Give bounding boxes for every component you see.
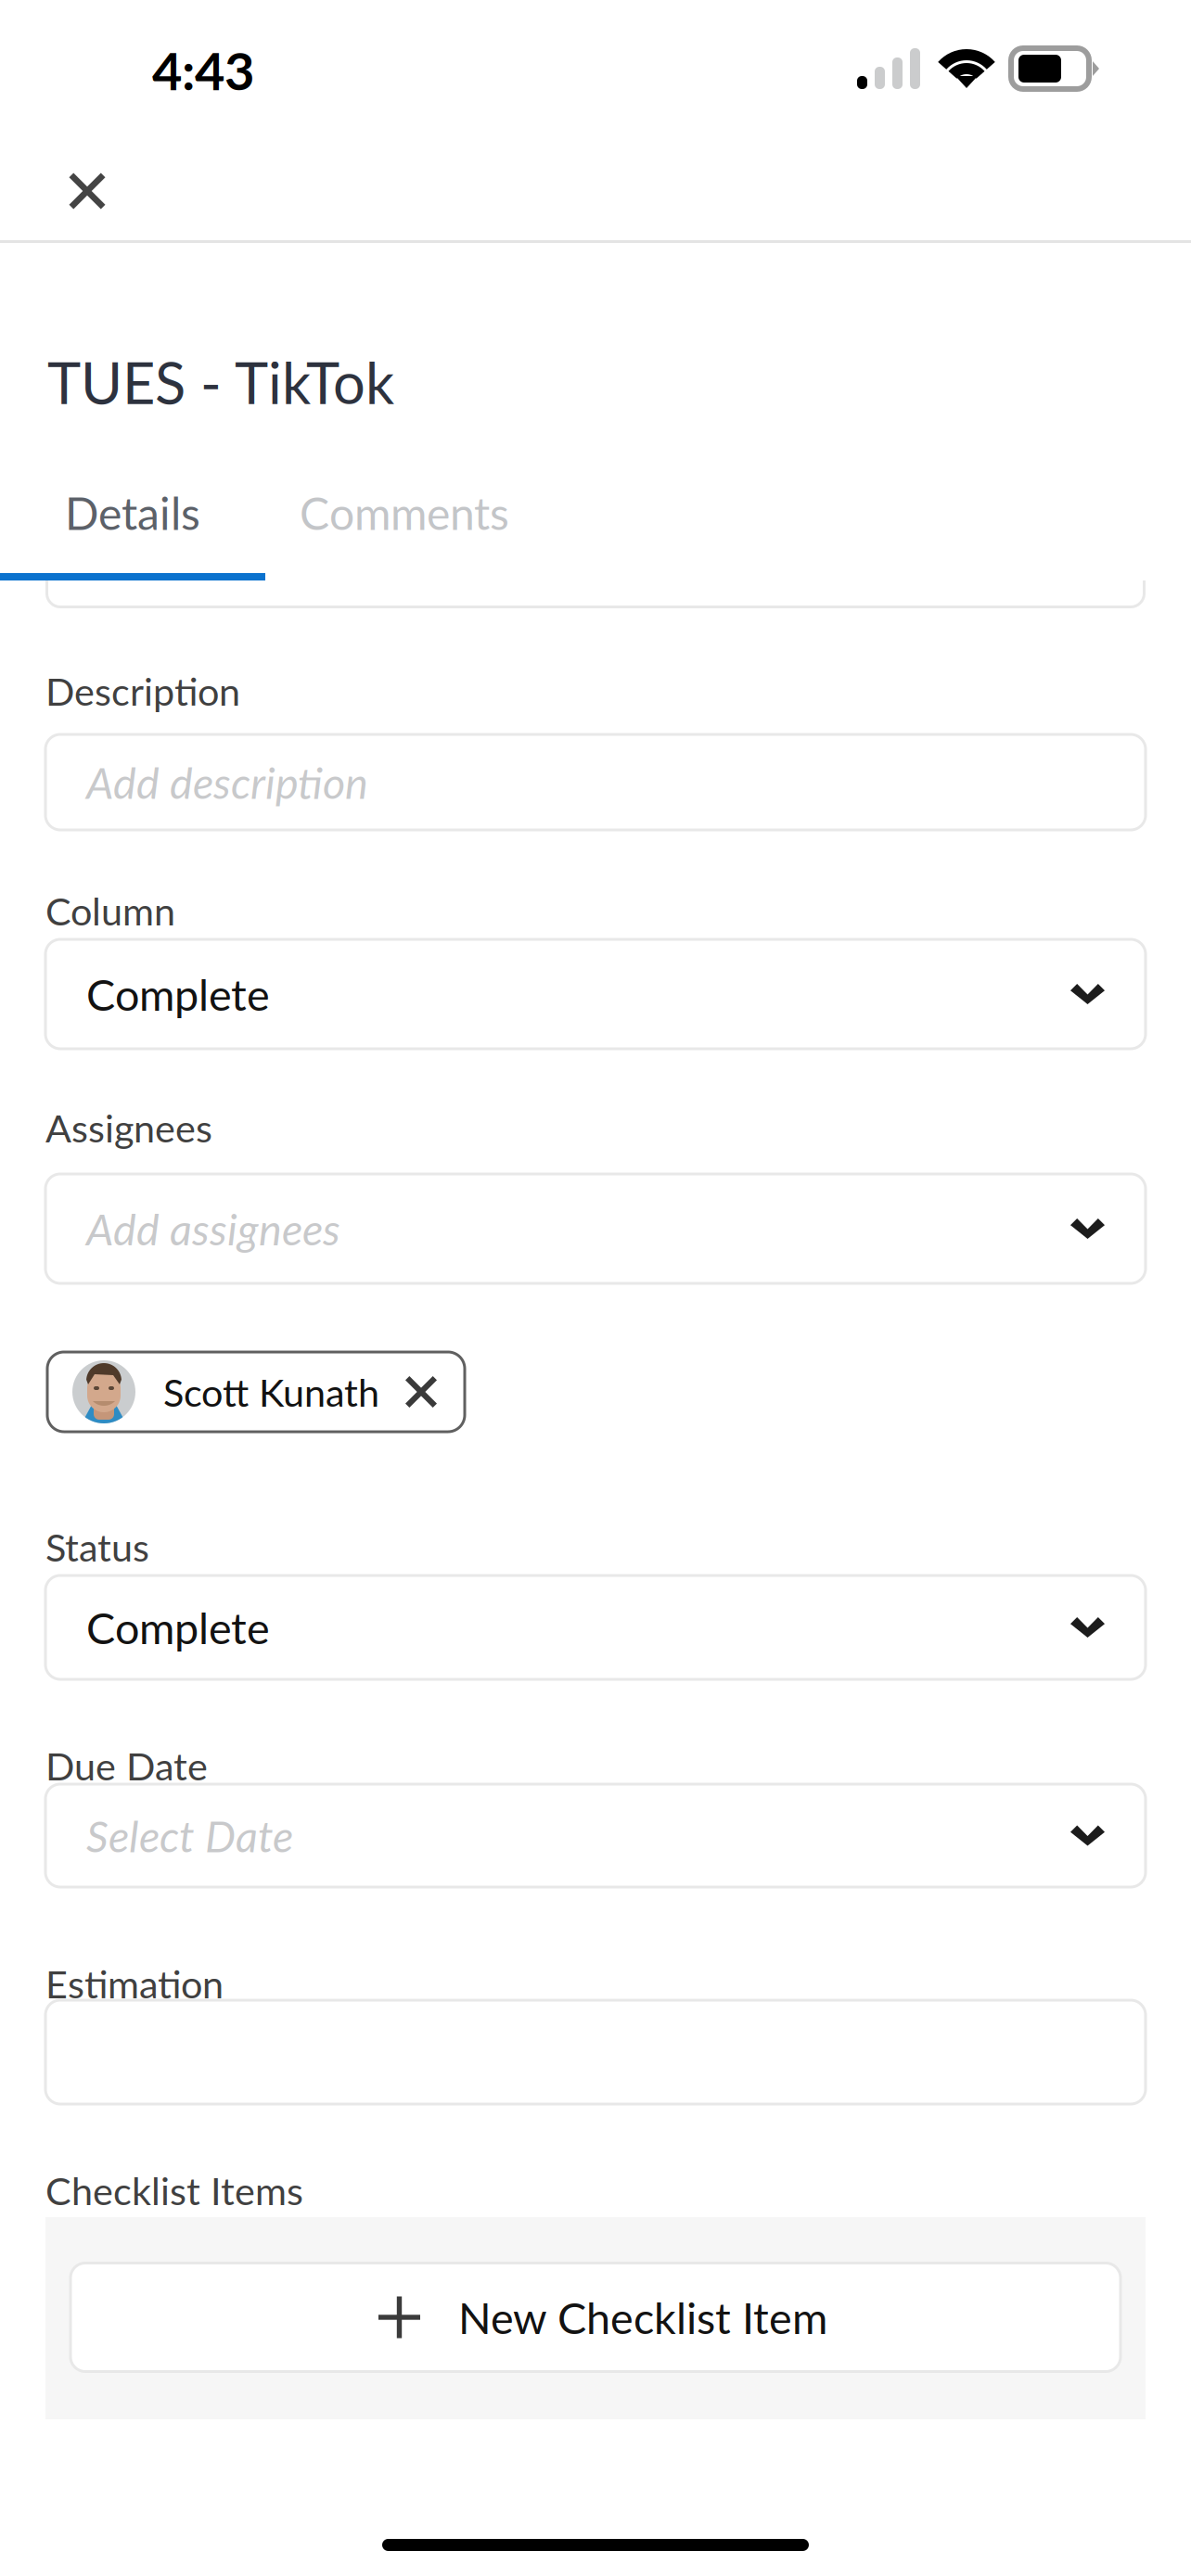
staticText: Description (45, 668, 240, 714)
button[interactable]: Close (28, 131, 147, 233)
staticText: Details (65, 486, 200, 539)
staticText: Scott Kunath (163, 1369, 379, 1415)
staticText: Add assignees (86, 1203, 340, 1255)
staticText: Add description (86, 756, 368, 808)
staticText: Select Date (86, 1810, 293, 1862)
staticText: Checklist Items (45, 2167, 303, 2213)
staticText: Complete (86, 1601, 270, 1653)
staticText: 4:43 (152, 39, 254, 101)
staticText: Estimation (45, 1960, 224, 2006)
button[interactable]: Comments (265, 491, 544, 535)
staticText: Due Date (45, 1743, 208, 1789)
staticText: TUES - TikTok (47, 348, 394, 416)
button[interactable]: Details (0, 491, 265, 535)
staticText: Comments (300, 486, 509, 539)
button[interactable]: Scott Kunath (47, 1352, 465, 1432)
staticText: New Checklist Item (458, 2291, 827, 2343)
staticText: Complete (86, 968, 270, 1020)
button[interactable]: New Checklist Item (45, 2263, 1146, 2372)
staticText: Status (45, 1524, 149, 1570)
staticText: Column (45, 888, 175, 934)
staticText: Assignees (45, 1105, 212, 1151)
